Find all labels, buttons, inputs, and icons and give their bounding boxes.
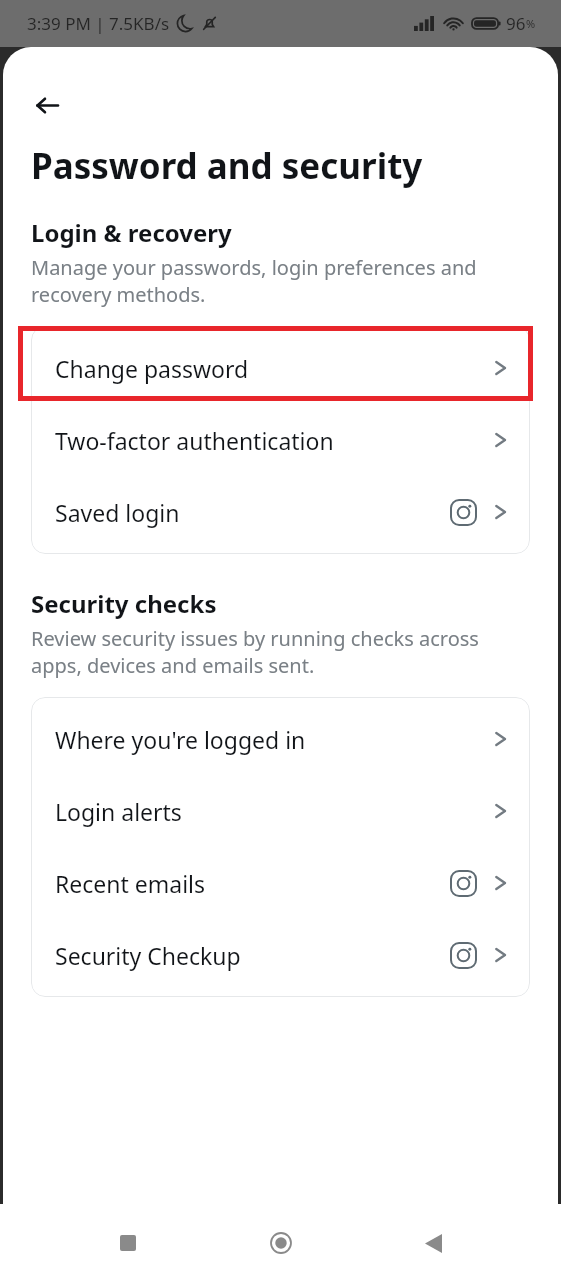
staticText: 3:39 PM | 7.5KB/s <box>27 12 170 35</box>
staticText: Manage your passwords, login preferences… <box>31 254 528 308</box>
staticText: Review security issues by running checks… <box>31 625 528 679</box>
staticText: Where you're logged in <box>55 724 306 755</box>
staticText: Change password <box>55 353 249 384</box>
button[interactable]: Security Checkup <box>31 919 530 991</box>
button[interactable]: Saved login <box>31 476 530 548</box>
button[interactable]: Back <box>24 82 70 128</box>
staticText: Password and security <box>31 142 423 190</box>
staticText: Login & recovery <box>31 216 232 249</box>
staticText: Security checks <box>31 587 217 620</box>
staticText: Two-factor authentication <box>55 425 334 456</box>
staticText: 96 <box>506 12 526 35</box>
button[interactable]: Change password <box>31 332 530 404</box>
staticText: Login alerts <box>55 796 182 827</box>
staticText: Security Checkup <box>55 940 241 971</box>
button[interactable]: Two-factor authentication <box>31 404 530 476</box>
staticText: % <box>526 16 536 31</box>
button[interactable]: Login alerts <box>31 775 530 847</box>
button[interactable]: Back <box>405 1215 461 1271</box>
staticText: Saved login <box>55 497 180 528</box>
button[interactable]: Where you're logged in <box>31 703 530 775</box>
staticText: Recent emails <box>55 868 206 899</box>
button[interactable]: Recents <box>100 1215 156 1271</box>
button[interactable]: Recent emails <box>31 847 530 919</box>
button[interactable]: Home <box>253 1215 309 1271</box>
